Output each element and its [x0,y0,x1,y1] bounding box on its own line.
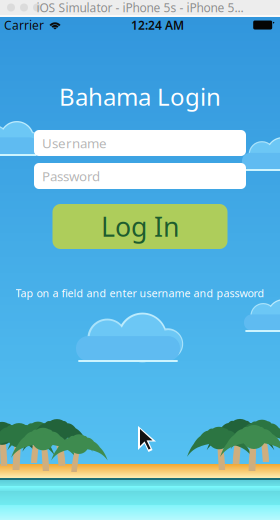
staticText: Carrier [4,17,44,33]
button[interactable]: Username [34,130,246,156]
staticText: iOS Simulator - iPhone 5s - iPhone 5... [36,0,243,15]
staticText: Username [42,134,107,152]
staticText: Log In [101,209,179,244]
staticText: Bahama Login [59,81,221,112]
staticText: 12:24 AM [131,17,184,33]
staticText: Tap on a field and enter username and pa… [15,286,264,300]
staticText: Password [42,167,100,185]
button[interactable]: Password [34,163,246,189]
button[interactable]: Log In [52,204,227,249]
